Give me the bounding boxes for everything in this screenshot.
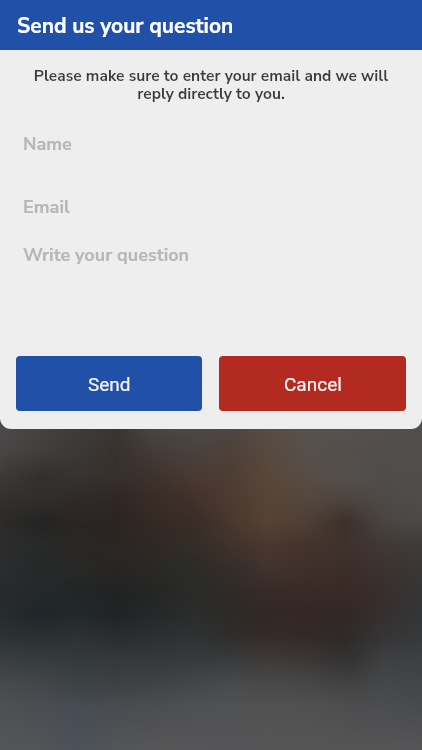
staticText: Send bbox=[88, 373, 131, 395]
staticText: Please make sure to enter your email and… bbox=[28, 65, 394, 104]
staticText: Write your question bbox=[23, 243, 190, 268]
staticText: Email bbox=[23, 195, 70, 220]
button[interactable]: Send bbox=[16, 356, 202, 411]
staticText: Send us your question bbox=[17, 12, 234, 41]
button[interactable]: Name bbox=[23, 132, 422, 157]
staticText: Name bbox=[23, 132, 72, 157]
button[interactable]: Cancel bbox=[219, 356, 406, 411]
button[interactable]: Write your question bbox=[23, 243, 422, 268]
staticText: Cancel bbox=[284, 373, 342, 395]
button[interactable]: Email bbox=[23, 195, 422, 220]
